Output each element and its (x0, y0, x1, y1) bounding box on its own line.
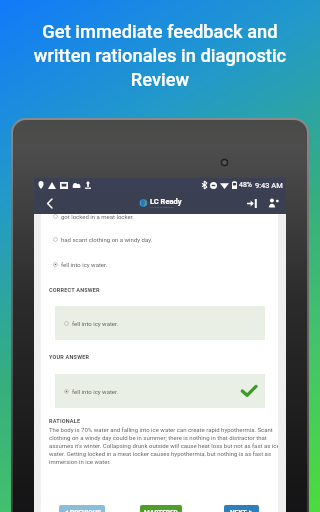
button[interactable]: fell into icy water. (55, 374, 265, 408)
staticText: YOUR ANSWER (49, 354, 90, 360)
staticText: had scant clothing on a windy day. (61, 236, 153, 243)
button[interactable]: Log in (242, 192, 262, 214)
staticText: CORRECT ANSWER (49, 287, 100, 293)
button[interactable]: got locked in a meat locker. (41, 214, 278, 224)
staticText: got locked in a meat locker. (61, 214, 134, 220)
staticText: RATIONALE (49, 418, 81, 424)
button[interactable]: fell into icy water. (55, 306, 265, 340)
staticText: Get immediate feedback and written ratio… (26, 21, 294, 90)
staticText: fell into icy water. (61, 261, 108, 268)
staticText: LC Ready (150, 197, 182, 206)
staticText: The body is 70% water and falling into i… (49, 426, 278, 465)
staticText: fell into icy water. (72, 388, 119, 395)
button[interactable]: Add account (262, 192, 284, 214)
button[interactable]: MASTERED (140, 505, 182, 512)
button[interactable]: PREVIOUS (59, 505, 105, 512)
staticText: NEXT (230, 509, 247, 512)
staticText: 9:43 AM (255, 181, 283, 190)
staticText: Powered by Lippincott (150, 206, 174, 209)
button[interactable]: had scant clothing on a windy day. (41, 231, 278, 247)
staticText: 48% (239, 181, 252, 189)
button[interactable]: NEXT (224, 505, 259, 512)
staticText: fell into icy water. (72, 320, 119, 327)
button[interactable]: fell into icy water. (41, 256, 278, 272)
button[interactable]: Back (38, 192, 60, 214)
staticText: PREVIOUS (70, 509, 101, 512)
staticText: MASTERED (144, 509, 178, 512)
